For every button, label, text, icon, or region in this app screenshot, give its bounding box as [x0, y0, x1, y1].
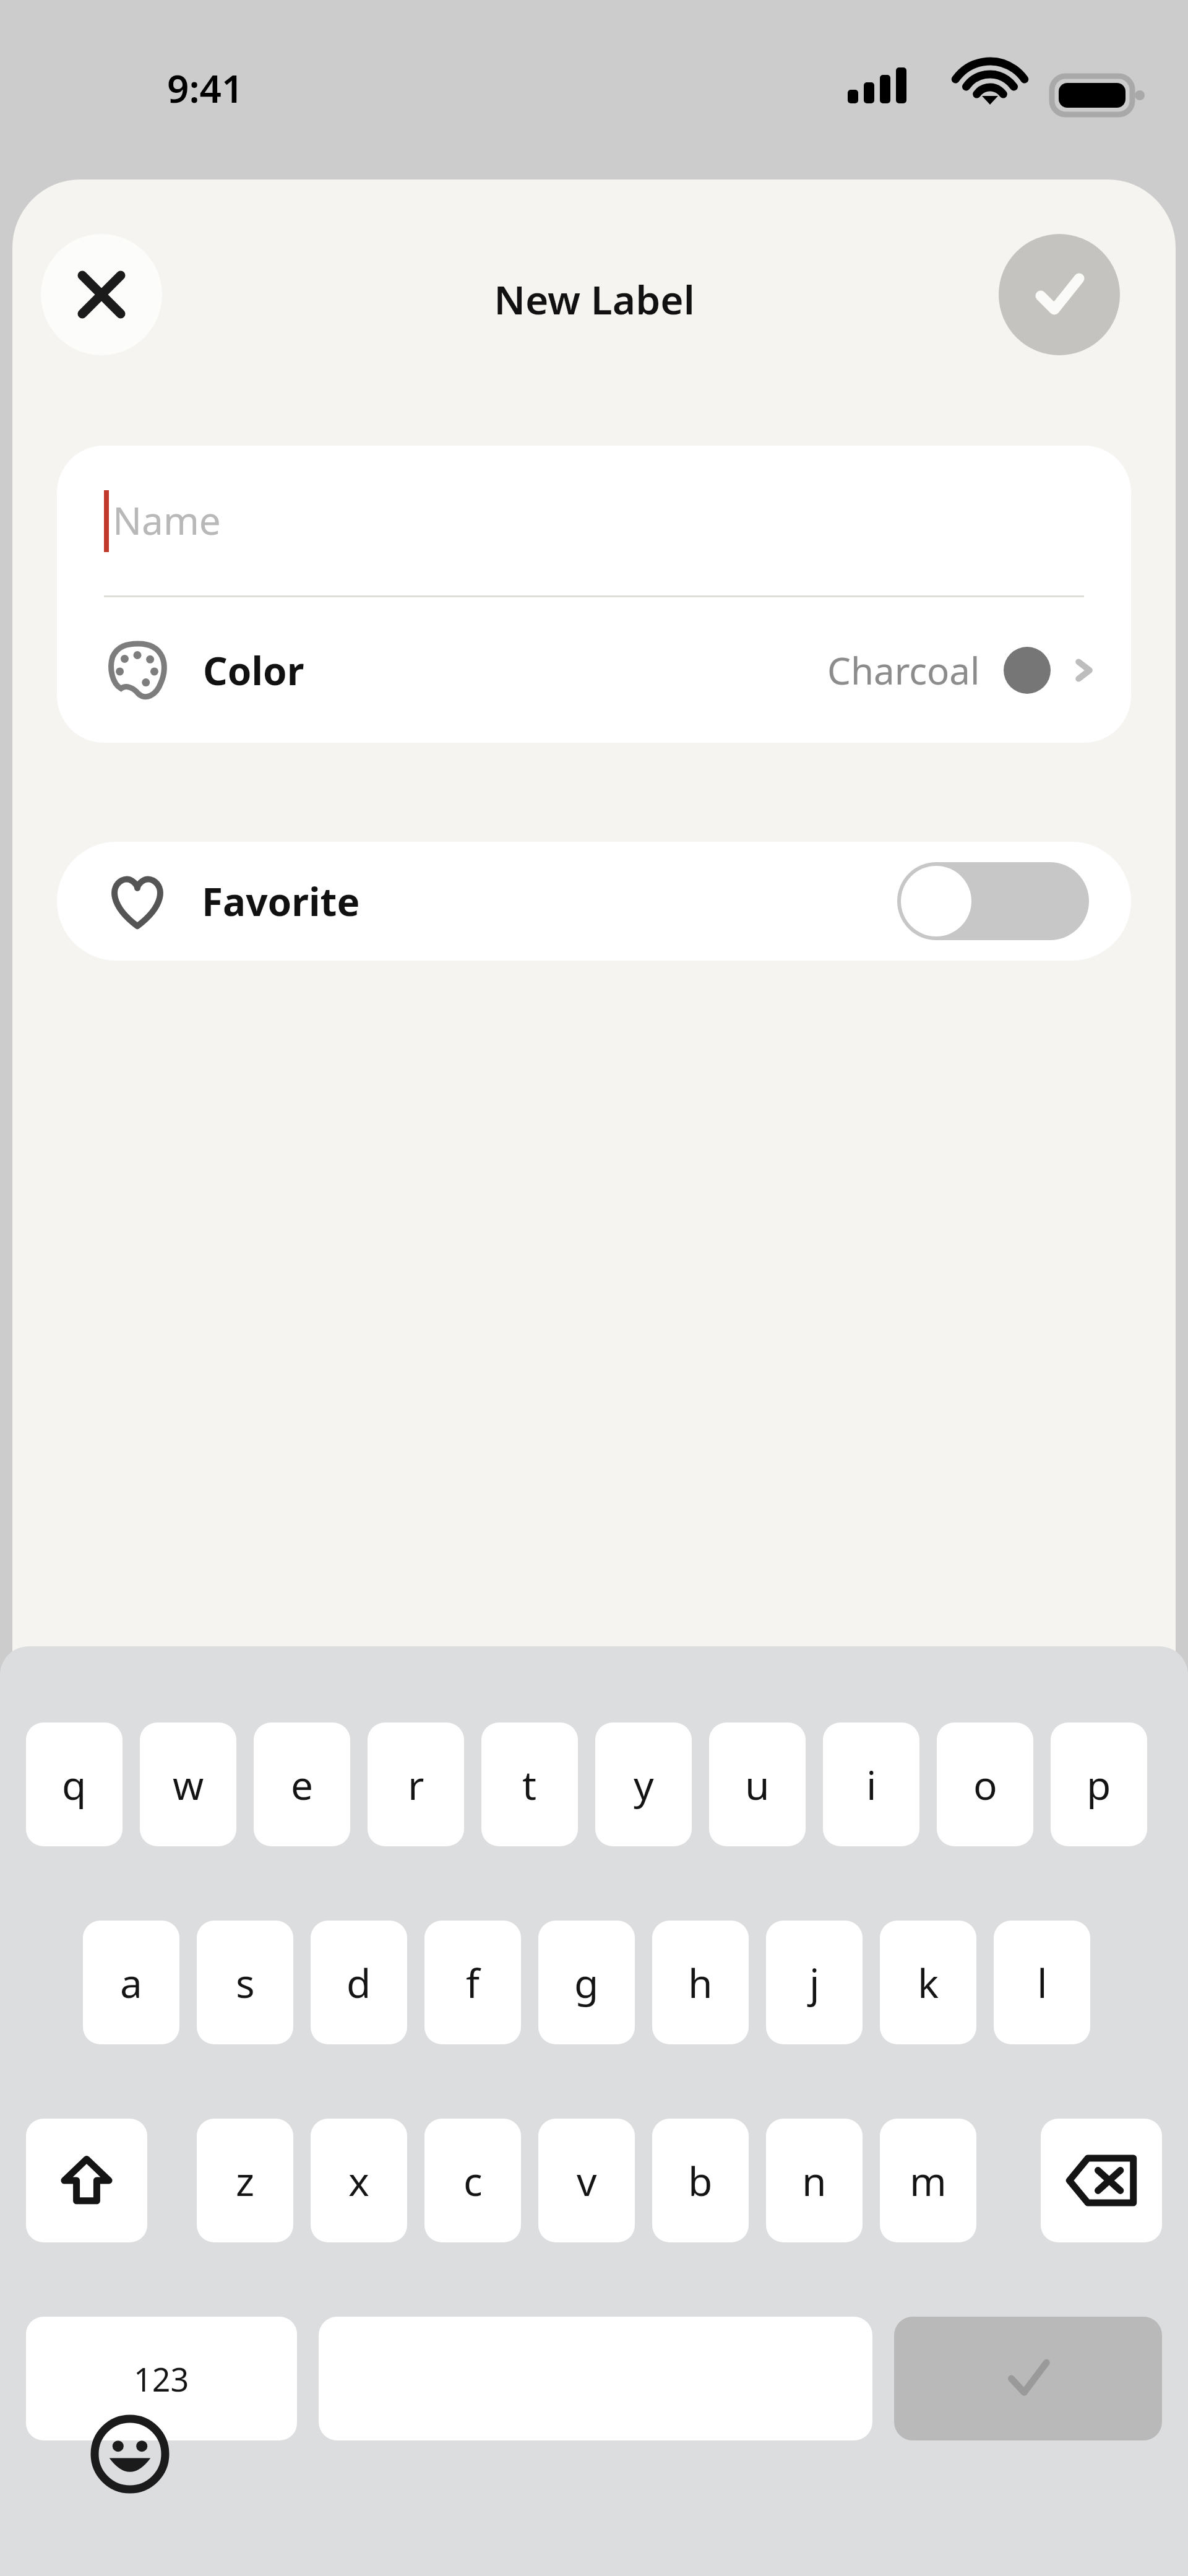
button[interactable]: a: [83, 1921, 179, 2044]
button[interactable]: r: [368, 1722, 464, 1846]
staticText: b: [688, 2154, 713, 2208]
button[interactable]: Color: [57, 597, 1131, 743]
button[interactable]: d: [311, 1921, 407, 2044]
staticText: Charcoal: [827, 645, 980, 696]
staticText: g: [574, 1956, 599, 2010]
staticText: h: [688, 1956, 713, 2010]
staticText: j: [809, 1956, 820, 2010]
button[interactable]: Enter: [894, 2317, 1162, 2440]
button[interactable]: k: [880, 1921, 976, 2044]
staticText: n: [802, 2154, 827, 2208]
button[interactable]: l: [994, 1921, 1090, 2044]
button[interactable]: Favorite: [57, 842, 1131, 961]
button[interactable]: f: [424, 1921, 521, 2044]
staticText: u: [745, 1758, 770, 1812]
staticText: o: [973, 1758, 997, 1812]
button[interactable]: Save: [999, 234, 1120, 355]
staticText: c: [463, 2154, 483, 2208]
button[interactable]: m: [880, 2119, 976, 2242]
button[interactable]: Close: [41, 234, 162, 355]
button[interactable]: i: [823, 1722, 919, 1846]
staticText: d: [346, 1956, 371, 2010]
staticText: i: [866, 1758, 877, 1812]
staticText: 123: [134, 2357, 189, 2401]
button[interactable]: v: [538, 2119, 635, 2242]
staticText: k: [918, 1956, 939, 2010]
staticText: z: [236, 2154, 255, 2208]
button[interactable]: Backspace: [1041, 2119, 1162, 2242]
staticText: e: [291, 1758, 314, 1812]
staticText: v: [577, 2154, 597, 2208]
button[interactable]: p: [1051, 1722, 1147, 1846]
staticText: w: [173, 1758, 204, 1812]
staticText: a: [120, 1956, 142, 2010]
button[interactable]: o: [937, 1722, 1033, 1846]
button[interactable]: w: [140, 1722, 236, 1846]
staticText: s: [236, 1956, 255, 2010]
button[interactable]: Emoji: [87, 2411, 173, 2497]
button[interactable]: x: [311, 2119, 407, 2242]
staticText: y: [634, 1758, 654, 1812]
staticText: m: [910, 2154, 947, 2208]
button[interactable]: c: [424, 2119, 521, 2242]
button[interactable]: j: [766, 1921, 863, 2044]
button[interactable]: b: [652, 2119, 749, 2242]
button[interactable]: z: [197, 2119, 293, 2242]
button[interactable]: u: [709, 1722, 806, 1846]
button[interactable]: [897, 862, 1089, 940]
button[interactable]: 123: [26, 2317, 297, 2440]
staticText: p: [1087, 1758, 1111, 1812]
button[interactable]: g: [538, 1921, 635, 2044]
button[interactable]: Shift: [26, 2119, 147, 2242]
staticText: Name: [113, 494, 221, 546]
staticText: x: [348, 2154, 369, 2208]
button[interactable]: q: [26, 1722, 123, 1846]
staticText: 9:41: [167, 62, 244, 114]
staticText: r: [408, 1758, 424, 1812]
button[interactable]: y: [595, 1722, 692, 1846]
button[interactable]: h: [652, 1921, 749, 2044]
staticText: New Label: [494, 272, 695, 326]
staticText: Color: [203, 644, 304, 696]
staticText: t: [522, 1758, 537, 1812]
button[interactable]: s: [197, 1921, 293, 2044]
staticText: Favorite: [202, 875, 360, 927]
staticText: f: [466, 1956, 480, 2010]
button[interactable]: e: [254, 1722, 350, 1846]
button[interactable]: t: [481, 1722, 578, 1846]
button[interactable]: n: [766, 2119, 863, 2242]
staticText: q: [62, 1758, 87, 1812]
staticText: l: [1037, 1956, 1048, 2010]
